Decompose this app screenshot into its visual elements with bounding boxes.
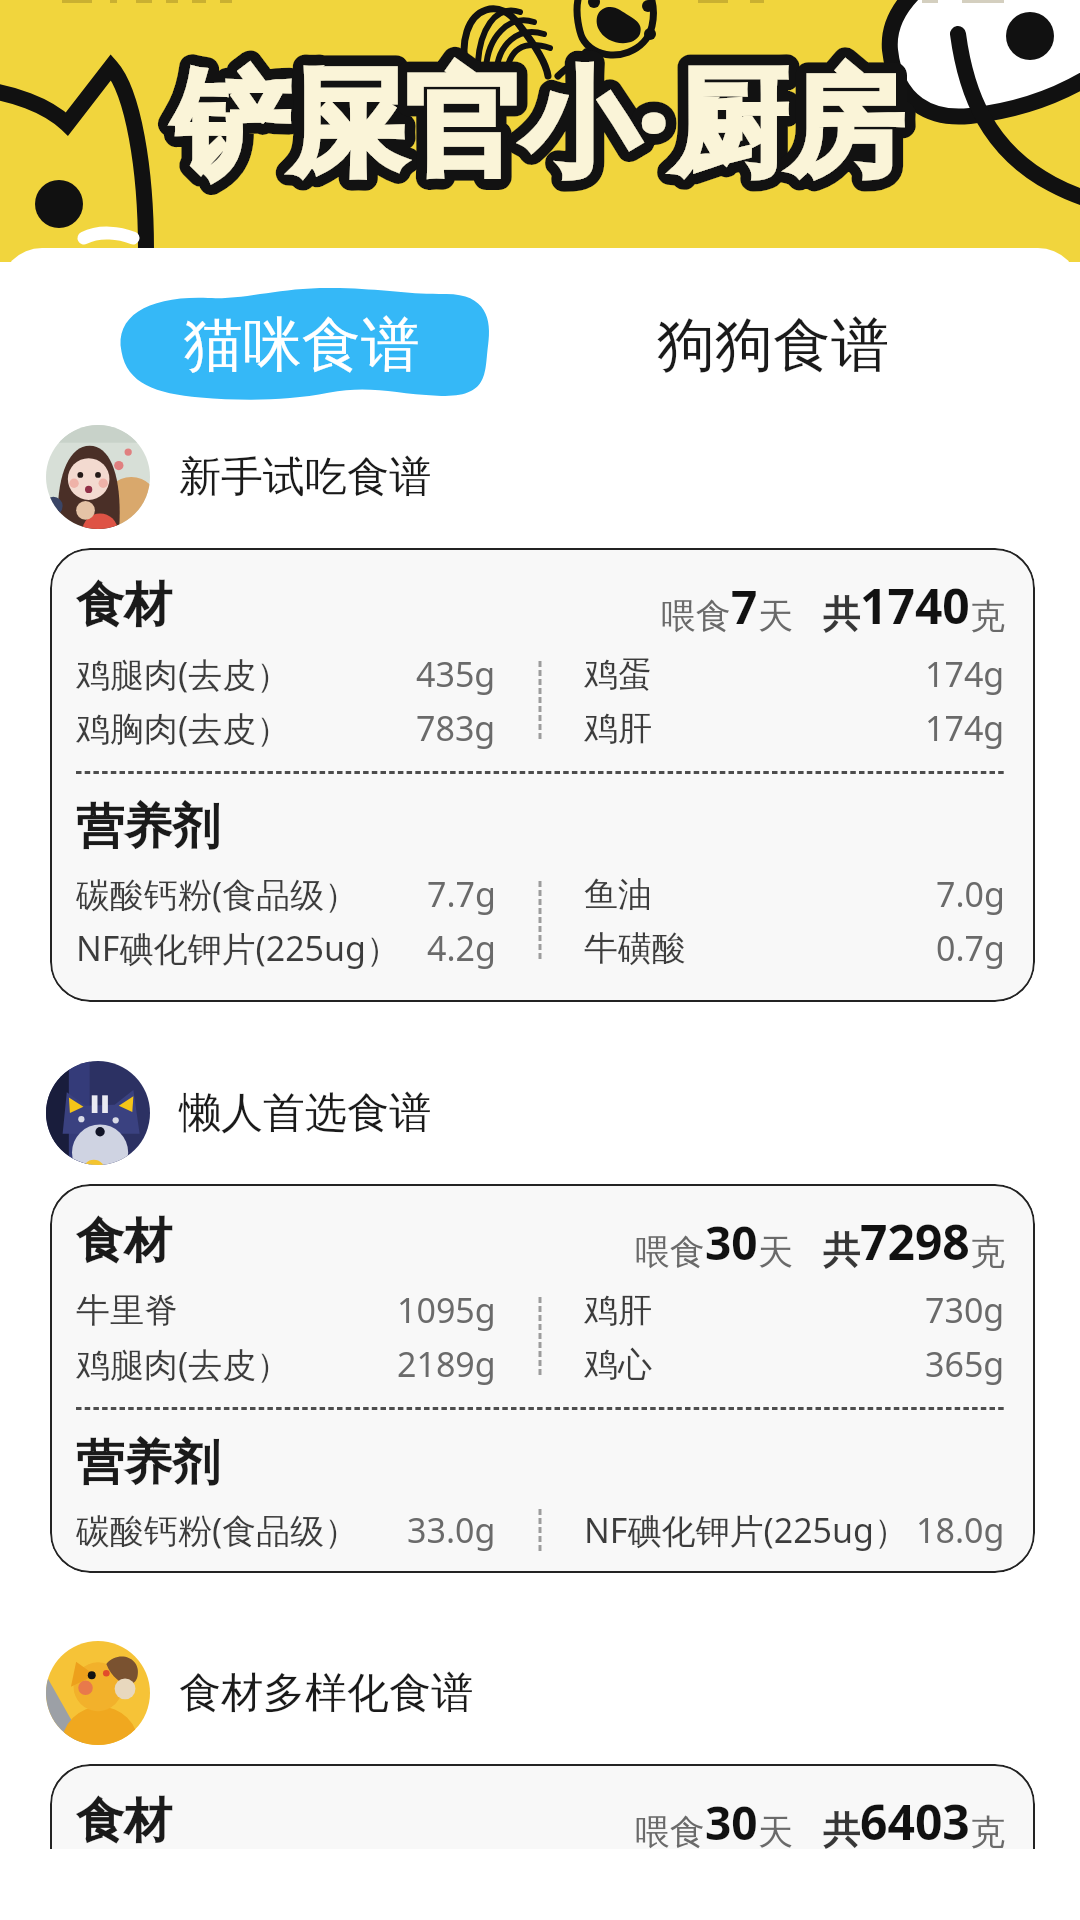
staticText: 鸡腿肉(去皮）	[76, 651, 291, 697]
staticText: 营养剂	[76, 1433, 220, 1491]
staticText: 天	[758, 1230, 793, 1274]
button[interactable]: 猫咪食谱	[114, 284, 490, 401]
staticText: 0.7g	[936, 925, 1005, 971]
button[interactable]: 狗狗食谱	[657, 287, 937, 403]
staticText: 营养剂	[76, 797, 220, 855]
staticText: 174g	[925, 651, 1005, 697]
staticText: 6403	[860, 1789, 970, 1854]
staticText: 鸡肝	[584, 1289, 652, 1332]
staticText: 2189g	[397, 1341, 496, 1387]
other: 作者头像 食材多样化	[46, 1641, 150, 1745]
staticText: 7.0g	[936, 871, 1005, 917]
staticText: 猫咪食谱	[184, 308, 420, 382]
staticText: 鸡心	[584, 1343, 652, 1386]
staticText: 喂食	[635, 1810, 705, 1854]
staticText: 18.0g	[916, 1507, 1005, 1553]
button[interactable]: 食材	[50, 1764, 1035, 1920]
staticText: 碳酸钙粉(食品级）	[76, 871, 359, 917]
staticText: 喂食	[635, 1230, 705, 1274]
staticText: 730g	[925, 1287, 1005, 1333]
button[interactable]: 食材	[50, 1184, 1035, 1573]
staticText: 碳酸钙粉(食品级）	[76, 1507, 359, 1553]
staticText: 鸡蛋	[584, 653, 652, 696]
staticText: 783g	[416, 705, 496, 751]
other: 作者头像 新手试吃	[46, 425, 150, 529]
staticText: 食材	[76, 1211, 172, 1271]
button[interactable]: 作者头像 食材多样化	[46, 1639, 1080, 1747]
staticText: 食材	[76, 575, 172, 635]
staticText: 30	[705, 1211, 758, 1274]
staticText: 牛磺酸	[584, 927, 686, 970]
staticText: 共	[823, 1227, 860, 1274]
staticText: 33.0g	[407, 1507, 496, 1553]
staticText: 铲屎官小·厨房	[173, 40, 903, 198]
staticText: 7	[731, 575, 758, 638]
staticText: 铲屎官小·厨房	[173, 40, 903, 198]
staticText: 30	[705, 1791, 758, 1854]
staticText: 共	[823, 591, 860, 638]
staticText: 懒人首选食谱	[179, 1087, 431, 1140]
button[interactable]: 食材	[50, 548, 1035, 1002]
staticText: 435g	[416, 651, 496, 697]
staticText: NF碘化钾片(225ug）	[584, 1507, 908, 1553]
staticText: 喂食	[661, 594, 731, 638]
staticText: 鸡肝	[584, 707, 652, 750]
staticText: NF碘化钾片(225ug）	[76, 925, 400, 971]
staticText: 共	[823, 1807, 860, 1854]
staticText: 鸡腿肉(去皮）	[76, 1341, 291, 1387]
staticText: 鱼油	[584, 873, 652, 916]
button[interactable]: 作者头像 新手试吃	[46, 423, 1080, 531]
staticText: 克	[970, 1810, 1005, 1854]
staticText: 新手试吃食谱	[179, 451, 431, 504]
staticText: 天	[758, 594, 793, 638]
staticText: 牛里脊	[76, 1289, 178, 1332]
other: 作者头像 懒人首选	[46, 1061, 150, 1165]
staticText: 7.7g	[427, 871, 496, 917]
staticText: 1740	[860, 573, 970, 638]
staticText: 鸡胸肉(去皮）	[76, 705, 291, 751]
staticText: 7298	[860, 1209, 970, 1274]
staticText: 食材	[76, 1791, 172, 1851]
staticText: 365g	[925, 1341, 1005, 1387]
staticText: 4.2g	[427, 925, 496, 971]
staticText: 克	[970, 594, 1005, 638]
staticText: 174g	[925, 705, 1005, 751]
staticText: 狗狗食谱	[657, 309, 889, 382]
staticText: 克	[970, 1230, 1005, 1274]
staticText: 天	[758, 1810, 793, 1854]
button[interactable]: 作者头像 懒人首选	[46, 1059, 1080, 1167]
staticText: 1095g	[397, 1287, 496, 1333]
staticText: 食材多样化食谱	[179, 1667, 473, 1720]
